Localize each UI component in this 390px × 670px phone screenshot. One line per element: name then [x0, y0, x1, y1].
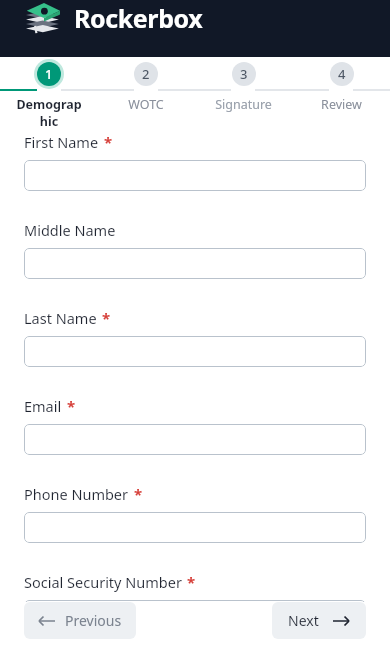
staticText: *: [67, 396, 76, 416]
staticText: 1: [45, 65, 53, 83]
other: Rockerbox logo: [22, 0, 62, 36]
staticText: Rockerbox: [74, 1, 203, 35]
staticText: Signature: [215, 96, 272, 113]
staticText: *: [104, 132, 113, 152]
staticText: Review: [321, 96, 362, 113]
staticText: Demographic: [13, 96, 85, 130]
staticText: Middle Name: [24, 220, 116, 240]
button[interactable]: [24, 512, 366, 543]
button[interactable]: 3: [207, 57, 279, 132]
staticText: WOTC: [128, 96, 164, 113]
staticText: *: [102, 308, 111, 328]
staticText: 4: [338, 65, 346, 83]
button[interactable]: [24, 336, 366, 367]
staticText: Next: [288, 611, 319, 630]
button[interactable]: 2: [110, 57, 182, 132]
button[interactable]: [24, 600, 366, 631]
button[interactable]: [24, 160, 366, 191]
button[interactable]: 1: [13, 57, 85, 132]
button[interactable]: 4: [305, 57, 377, 132]
staticText: *: [134, 484, 143, 504]
staticText: Last Name: [24, 308, 97, 328]
button[interactable]: Next: [272, 602, 366, 639]
staticText: *: [187, 572, 196, 592]
staticText: 3: [240, 65, 248, 83]
staticText: 2: [142, 65, 150, 83]
button[interactable]: Previous: [24, 602, 136, 639]
staticText: Phone Number: [24, 484, 129, 504]
staticText: Social Security Number: [24, 572, 182, 592]
staticText: Previous: [65, 611, 122, 630]
staticText: First Name: [24, 132, 99, 152]
button[interactable]: [24, 248, 366, 279]
staticText: Email: [24, 396, 62, 416]
button[interactable]: [24, 424, 366, 455]
